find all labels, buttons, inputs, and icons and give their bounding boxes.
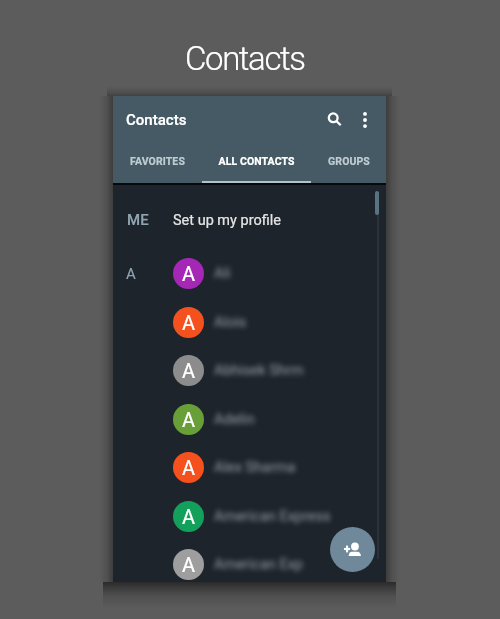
button[interactable]: ME	[113, 196, 386, 244]
staticText: A	[182, 456, 196, 479]
button[interactable]: FAVORITES	[113, 144, 202, 183]
staticText: ME	[127, 211, 149, 229]
staticText: Alex Sharma	[214, 459, 296, 476]
staticText: GROUPS	[328, 155, 370, 167]
staticText: Ali	[214, 265, 231, 282]
button[interactable]: A	[113, 249, 386, 298]
button[interactable]: A	[113, 346, 386, 395]
staticText: Abhisek Shrm	[214, 362, 304, 379]
button[interactable]: A	[113, 540, 386, 589]
staticText: Set up my profile	[173, 212, 281, 229]
staticText: A	[182, 553, 196, 576]
button[interactable]: GROUPS	[311, 144, 386, 183]
button[interactable]: A	[113, 298, 386, 347]
staticText: Contacts	[185, 39, 305, 77]
button[interactable]: A	[113, 443, 386, 492]
staticText: A	[182, 262, 196, 285]
button[interactable]: Search	[317, 103, 351, 137]
staticText: American Express	[214, 508, 331, 525]
staticText: Alois	[214, 314, 247, 331]
button[interactable]: A	[113, 492, 386, 541]
staticText: ALL CONTACTS	[218, 155, 295, 167]
staticText: Contacts	[126, 111, 187, 129]
staticText: A	[182, 505, 196, 528]
staticText: A	[182, 311, 196, 334]
staticText: A	[126, 265, 136, 283]
staticText: Adelin	[214, 411, 255, 428]
button[interactable]: ALL CONTACTS	[202, 144, 311, 183]
staticText: American Exp	[214, 556, 303, 573]
button[interactable]: A	[113, 395, 386, 444]
staticText: FAVORITES	[130, 155, 185, 167]
staticText: A	[182, 408, 196, 431]
button[interactable]: More options	[351, 106, 379, 134]
staticText: A	[182, 359, 196, 382]
button[interactable]: Add contact	[330, 527, 375, 572]
